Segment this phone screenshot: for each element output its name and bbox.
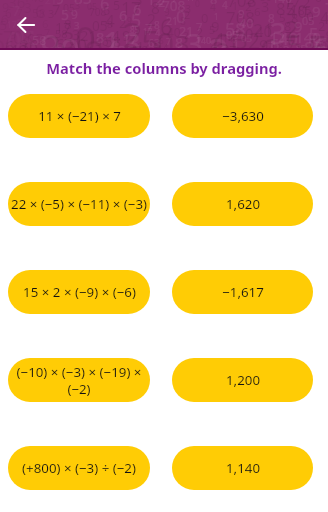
- staticText: 2: [283, 42, 290, 48]
- staticText: 3: [175, 26, 190, 48]
- staticText: 2: [285, 12, 299, 45]
- staticText: 140: [272, 0, 292, 7]
- staticText: 6: [212, 24, 231, 48]
- staticText: 85: [304, 36, 325, 48]
- button[interactable]: −3,630: [172, 94, 313, 138]
- staticText: 2: [245, 0, 252, 15]
- staticText: (−10) × (−3) × (−19) × (−2): [11, 363, 147, 397]
- staticText: 140: [136, 36, 162, 48]
- staticText: 5: [17, 18, 38, 48]
- staticText: −1,617: [222, 283, 264, 301]
- staticText: 2: [210, 33, 218, 48]
- staticText: 5: [209, 23, 216, 38]
- staticText: 708: [325, 0, 328, 20]
- staticText: 708: [3, 25, 33, 48]
- staticText: 05: [63, 1, 76, 15]
- staticText: 9: [312, 1, 321, 22]
- staticText: 3: [74, 19, 80, 32]
- staticText: 0: [7, 24, 22, 48]
- staticText: 9: [71, 6, 78, 22]
- staticText: 17: [121, 0, 141, 20]
- staticText: 9: [127, 15, 132, 27]
- staticText: 9: [57, 44, 63, 48]
- button[interactable]: 1,620: [172, 182, 313, 226]
- staticText: 2: [119, 14, 127, 32]
- staticText: 6: [270, 34, 280, 48]
- staticText: 3: [72, 25, 81, 44]
- staticText: 8: [107, 18, 113, 31]
- staticText: 12: [147, 0, 164, 9]
- button[interactable]: 22 × (−5) × (−11) × (−3): [8, 182, 150, 226]
- staticText: 21: [80, 25, 97, 45]
- staticText: 1: [237, 45, 243, 48]
- staticText: 2: [196, 24, 204, 41]
- button[interactable]: 15 × 2 × (−9) × (−6): [8, 270, 150, 314]
- staticText: 5: [131, 42, 140, 48]
- staticText: 8: [96, 28, 105, 48]
- staticText: 8: [151, 0, 160, 18]
- staticText: Match the columns by dragging.: [0, 58, 328, 78]
- staticText: 2: [19, 38, 28, 48]
- staticText: 40: [320, 7, 328, 29]
- staticText: 40: [9, 40, 28, 48]
- staticText: 140: [196, 35, 212, 47]
- staticText: 2: [147, 9, 156, 30]
- staticText: 9: [40, 23, 61, 48]
- staticText: 58: [225, 17, 246, 41]
- button[interactable]: (+800) × (−3) ÷ (−2): [8, 446, 150, 490]
- staticText: 05: [87, 1, 98, 13]
- button[interactable]: 11 × (−21) × 7: [8, 94, 150, 138]
- staticText: 40: [239, 15, 254, 32]
- button[interactable]: Back: [10, 9, 42, 41]
- staticText: 1,200: [226, 371, 260, 389]
- staticText: 17: [278, 28, 292, 44]
- staticText: 6: [100, 0, 110, 15]
- staticText: 9: [69, 34, 77, 48]
- staticText: 36: [118, 41, 135, 48]
- button[interactable]: −1,617: [172, 270, 313, 314]
- staticText: 6: [133, 0, 142, 20]
- staticText: 6: [55, 33, 65, 48]
- staticText: 0: [156, 23, 175, 48]
- staticText: 17: [123, 31, 137, 48]
- staticText: (+800) × (−3) ÷ (−2): [22, 459, 136, 477]
- staticText: 708: [162, 0, 186, 15]
- staticText: 17: [55, 18, 72, 37]
- staticText: 6: [159, 35, 164, 46]
- staticText: 3: [234, 23, 248, 48]
- staticText: 8: [304, 42, 314, 48]
- staticText: 6: [5, 36, 15, 48]
- staticText: 140: [295, 27, 322, 48]
- staticText: 140: [223, 33, 238, 45]
- staticText: 7: [172, 0, 177, 4]
- staticText: 9: [164, 5, 170, 19]
- button[interactable]: 1,140: [172, 446, 313, 490]
- staticText: 7: [286, 35, 296, 48]
- staticText: 1,140: [226, 459, 260, 477]
- button[interactable]: (−10) × (−3) × (−19) × (−2): [8, 358, 150, 402]
- staticText: 0: [60, 27, 81, 48]
- staticText: 8: [268, 10, 275, 26]
- staticText: 36: [314, 35, 328, 48]
- staticText: 40: [287, 0, 308, 23]
- staticText: 36: [95, 33, 109, 48]
- staticText: 85: [298, 2, 312, 18]
- button[interactable]: 1,200: [172, 358, 313, 402]
- staticText: 17: [284, 0, 301, 12]
- staticText: 1: [103, 21, 121, 48]
- staticText: 9: [141, 41, 149, 48]
- staticText: 21: [244, 44, 263, 48]
- staticText: 5: [61, 5, 69, 24]
